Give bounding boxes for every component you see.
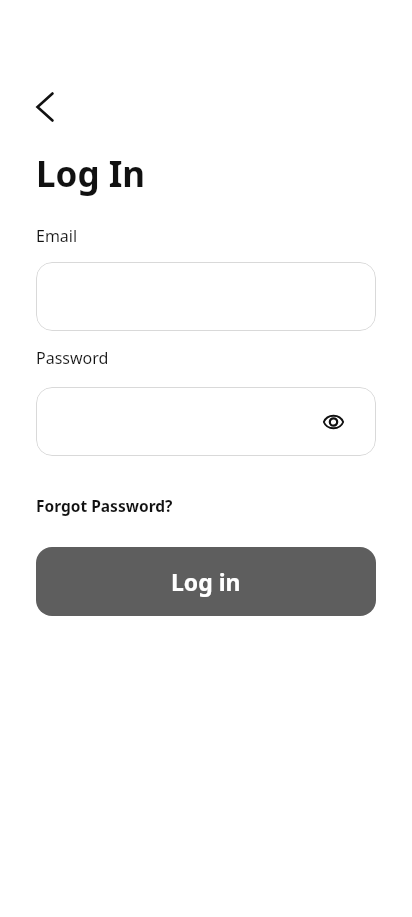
- button[interactable]: [36, 387, 376, 456]
- staticText: Log In: [36, 150, 146, 198]
- button[interactable]: [321, 410, 345, 434]
- button[interactable]: Log in: [36, 547, 376, 616]
- button[interactable]: [36, 262, 376, 331]
- staticText: Log in: [171, 566, 241, 597]
- button[interactable]: [36, 92, 66, 122]
- staticText: Password: [36, 347, 109, 369]
- button[interactable]: Forgot Password?: [36, 495, 173, 516]
- staticText: Email: [36, 225, 78, 247]
